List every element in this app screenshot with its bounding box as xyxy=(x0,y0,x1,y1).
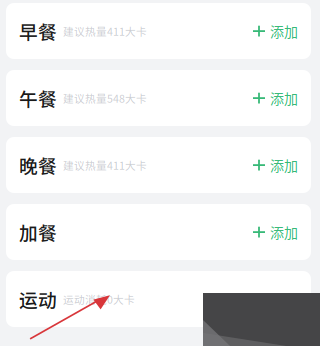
staticText: 早餐 xyxy=(19,17,57,44)
button[interactable]: 晚餐 xyxy=(6,137,311,193)
staticText: 建议热量548大卡 xyxy=(63,90,147,106)
staticText: 运动 xyxy=(19,285,57,312)
staticText: 午餐 xyxy=(19,84,57,111)
staticText: 晚餐 xyxy=(19,151,57,178)
button[interactable]: 早餐 xyxy=(6,3,311,59)
staticText: 添加 xyxy=(270,88,298,108)
staticText: 运动消耗0大卡 xyxy=(63,291,135,307)
staticText: 添加 xyxy=(270,222,298,242)
staticText: 加餐 xyxy=(19,218,57,245)
button[interactable]: 加餐 xyxy=(6,204,311,260)
staticText: 建议热量411大卡 xyxy=(63,157,147,173)
staticText: 添加 xyxy=(270,21,298,41)
staticText: 建议热量411大卡 xyxy=(63,23,147,39)
button[interactable]: 午餐 xyxy=(6,70,311,126)
staticText: 添加 xyxy=(270,155,298,175)
button[interactable]: 运动 xyxy=(6,271,311,327)
